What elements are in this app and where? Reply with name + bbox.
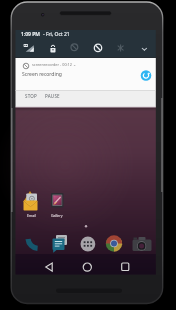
button[interactable] (26, 233, 42, 253)
staticText: Screen recording (22, 71, 62, 78)
button[interactable] (114, 42, 127, 54)
staticText: - Fri, Oct 21 (43, 31, 70, 38)
button[interactable] (21, 41, 37, 54)
button[interactable] (79, 258, 95, 274)
button[interactable] (51, 233, 68, 253)
button[interactable] (47, 42, 59, 54)
button[interactable] (80, 236, 96, 252)
staticText: Email (27, 213, 36, 218)
staticText: screenrecorder - 00:12 ⌄ (32, 62, 77, 67)
button[interactable] (68, 41, 81, 54)
button[interactable] (139, 69, 153, 83)
staticText: Gallery (51, 213, 63, 218)
button[interactable] (132, 236, 152, 252)
button[interactable] (41, 258, 57, 274)
button[interactable]: STOP (25, 93, 38, 101)
button[interactable] (138, 43, 150, 54)
button[interactable] (91, 41, 105, 55)
button[interactable]: PAUSE (45, 93, 61, 101)
button[interactable] (22, 190, 39, 217)
button[interactable] (117, 258, 133, 274)
button[interactable] (105, 235, 123, 252)
button[interactable] (16, 58, 156, 90)
staticText: 1:09 PM (21, 31, 40, 38)
button[interactable] (49, 191, 65, 217)
